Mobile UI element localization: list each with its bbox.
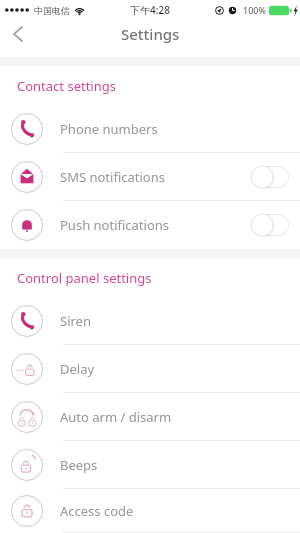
staticText: 100% — [243, 4, 266, 16]
staticText: Control panel settings — [17, 269, 152, 287]
button[interactable]: Access code — [0, 489, 300, 533]
button[interactable]: SMS notifications — [0, 153, 300, 201]
staticText: Siren — [60, 312, 91, 330]
staticText: Auto arm / disarm — [60, 408, 172, 426]
button[interactable]: Phone numbers — [0, 105, 300, 153]
staticText: Push notifications — [60, 216, 170, 234]
button[interactable]: Toggle SMS notifications — [250, 165, 290, 189]
staticText: Settings — [121, 24, 180, 44]
button[interactable]: Siren — [0, 297, 300, 345]
staticText: Contact settings — [17, 77, 116, 95]
button[interactable]: Delay — [0, 345, 300, 393]
button[interactable]: Back — [4, 20, 32, 48]
staticText: Delay — [60, 360, 95, 378]
staticText: Phone numbers — [60, 120, 158, 138]
staticText: 中国电信 — [34, 5, 70, 16]
staticText: 下午4:28 — [130, 3, 170, 17]
button[interactable]: Auto arm / disarm — [0, 393, 300, 441]
staticText: Beeps — [60, 456, 98, 474]
button[interactable]: Toggle Push notifications — [250, 213, 290, 237]
button[interactable]: Push notifications — [0, 201, 300, 249]
button[interactable]: Beeps — [0, 441, 300, 489]
staticText: Access code — [60, 502, 134, 520]
staticText: SMS notifications — [60, 168, 165, 186]
